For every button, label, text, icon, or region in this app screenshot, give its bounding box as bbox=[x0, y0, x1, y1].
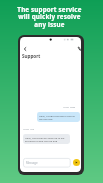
button[interactable]: Hello, the driver will drive up to the e… bbox=[23, 134, 70, 144]
staticText: 10:32 Olga bbox=[63, 106, 76, 109]
button[interactable]: Message bbox=[24, 158, 71, 167]
button[interactable]: Send bbox=[73, 159, 80, 166]
staticText: The support service will quickly resolve… bbox=[0, 5, 101, 29]
button[interactable]: Hello, I forgot the bag in the car. Tell… bbox=[37, 112, 80, 122]
button[interactable]: Back bbox=[22, 46, 28, 52]
staticText: Hello, the driver will drive up to the e… bbox=[25, 136, 65, 142]
staticText: Message bbox=[26, 161, 38, 165]
staticText: Support bbox=[22, 53, 41, 59]
button[interactable]: Call bbox=[77, 46, 81, 51]
staticText: 10:33 You bbox=[23, 128, 35, 131]
staticText: Hello, I forgot the bag in the car. Tell… bbox=[39, 114, 78, 120]
